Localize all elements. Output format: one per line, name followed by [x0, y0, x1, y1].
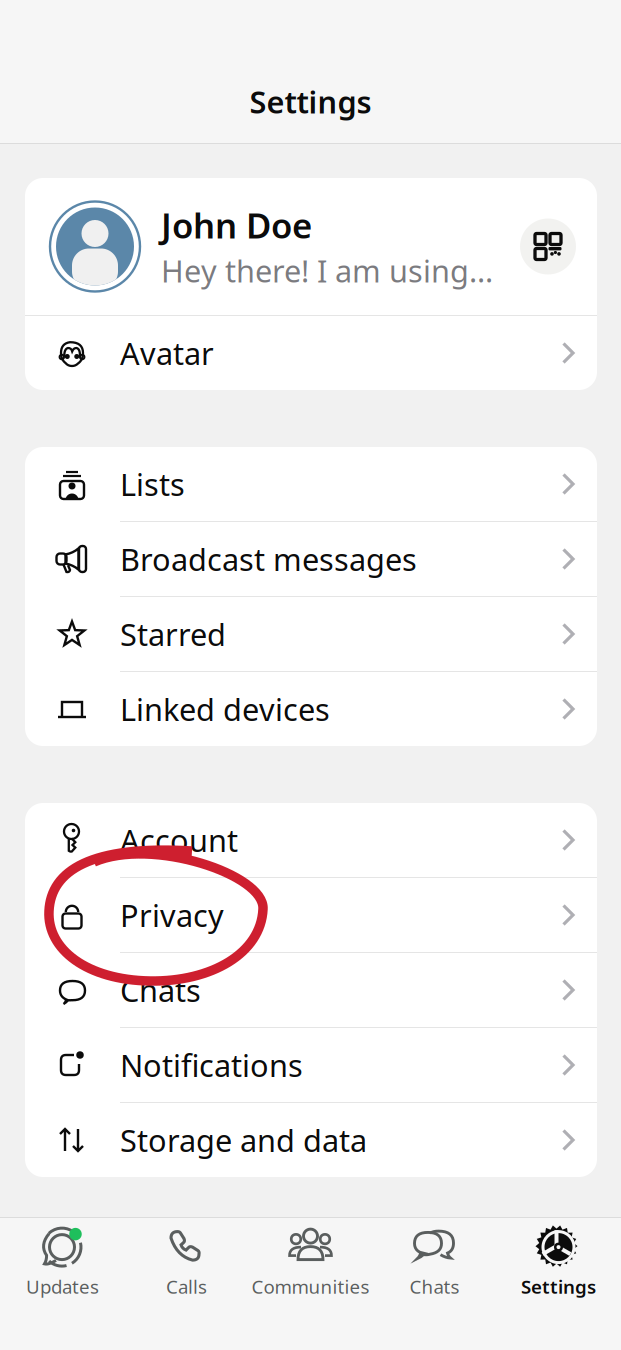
button[interactable]: Chats [25, 953, 597, 1028]
button[interactable]: Avatar [25, 316, 597, 390]
staticText: Storage and data [120, 1120, 367, 1160]
staticText: Avatar [120, 333, 214, 373]
button[interactable]: Settings [496, 1223, 620, 1299]
staticText: Hey there! I am using... [161, 250, 493, 291]
staticText: Settings [521, 1274, 596, 1299]
staticText: Notifications [120, 1045, 303, 1085]
staticText: Privacy [120, 895, 224, 935]
staticText: Account [120, 820, 238, 860]
button[interactable]: Linked devices [25, 672, 597, 746]
button[interactable]: Chats [372, 1223, 496, 1299]
staticText: Communities [251, 1274, 369, 1299]
staticText: Chats [120, 970, 201, 1010]
staticText: Calls [166, 1274, 207, 1299]
button[interactable]: Updates [0, 1223, 124, 1299]
staticText: Settings [249, 81, 371, 122]
staticText: John Doe [161, 202, 312, 248]
staticText: Linked devices [120, 689, 330, 729]
button[interactable]: John Doe [25, 178, 597, 315]
button[interactable]: Account [25, 803, 597, 878]
button[interactable]: Lists [25, 447, 597, 522]
staticText: Starred [120, 614, 226, 654]
button[interactable]: Starred [25, 597, 597, 672]
button[interactable]: Notifications [25, 1028, 597, 1103]
staticText: Chats [409, 1274, 459, 1299]
button[interactable]: Storage and data [25, 1103, 597, 1177]
staticText: Updates [26, 1274, 99, 1299]
button[interactable]: Communities [248, 1223, 372, 1299]
staticText: Broadcast messages [120, 539, 417, 579]
staticText: Lists [120, 464, 185, 504]
button[interactable]: Broadcast messages [25, 522, 597, 597]
button[interactable]: Privacy [25, 878, 597, 953]
button[interactable]: Calls [124, 1223, 248, 1299]
